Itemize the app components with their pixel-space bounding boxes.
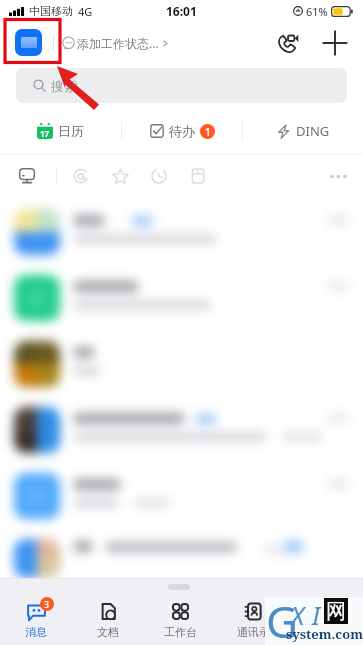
button[interactable]: Devices: [10, 159, 44, 193]
button[interactable]: 3: [0, 594, 72, 645]
staticText: 日历: [58, 123, 84, 139]
button[interactable]: 我的: [290, 594, 363, 645]
button[interactable]: 17: [31, 113, 90, 149]
button[interactable]: Archive: [181, 159, 215, 193]
button[interactable]: 待办: [144, 113, 221, 149]
staticText: 3: [44, 598, 50, 610]
staticText: 61%: [306, 4, 328, 19]
button[interactable]: Video call: [273, 28, 303, 58]
button[interactable]: [0, 394, 363, 460]
staticText: I: [312, 598, 321, 632]
button[interactable]: [0, 262, 363, 328]
staticText: 添加工作状态...: [77, 35, 159, 51]
button[interactable]: [0, 460, 363, 526]
staticText: 17: [40, 128, 50, 139]
button[interactable]: [0, 328, 363, 394]
button[interactable]: Profile avatar: [15, 29, 42, 56]
staticText: 消息: [25, 625, 47, 639]
staticText: 通讯录: [237, 625, 270, 639]
staticText: X: [291, 598, 305, 632]
button[interactable]: More: [321, 159, 355, 193]
button[interactable]: 添加工作状态...: [62, 35, 169, 51]
staticText: G: [266, 591, 299, 639]
staticText: 文档: [97, 625, 119, 639]
button[interactable]: [0, 526, 363, 578]
staticText: system.com: [286, 625, 363, 643]
staticText: DING: [296, 122, 330, 140]
staticText: 4G: [78, 4, 93, 19]
button[interactable]: Mentions: [64, 159, 98, 193]
button[interactable]: 工作台: [144, 594, 217, 645]
staticText: 1: [205, 125, 211, 139]
button[interactable]: Starred: [103, 159, 137, 193]
staticText: 我的: [316, 625, 338, 639]
staticText: 中国移动: [29, 4, 73, 18]
staticText: 工作台: [164, 625, 197, 639]
button[interactable]: Recent: [142, 159, 176, 193]
button[interactable]: [0, 196, 363, 262]
staticText: 16:01: [166, 3, 197, 19]
button[interactable]: 通讯录: [217, 594, 290, 645]
staticText: 网: [326, 599, 346, 624]
staticText: 待办: [169, 123, 195, 139]
button[interactable]: 文档: [72, 594, 144, 645]
button[interactable]: DING: [270, 113, 336, 149]
button[interactable]: 搜索: [16, 68, 347, 103]
staticText: 搜索: [51, 78, 77, 94]
button[interactable]: Add: [320, 28, 350, 58]
